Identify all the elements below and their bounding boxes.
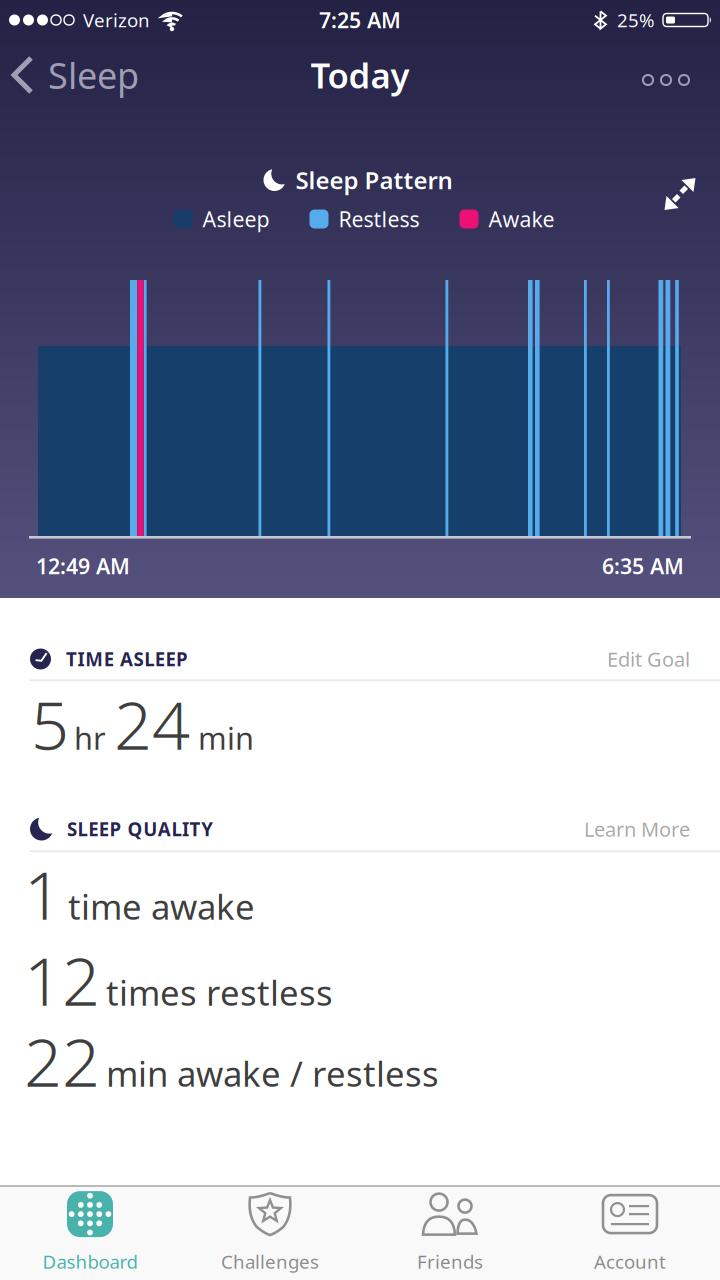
button[interactable]: Account [540,1188,720,1274]
staticText: 6:35 AM [602,552,684,580]
staticText: min awake / restless [106,1050,439,1096]
button[interactable]: Learn More [584,816,690,842]
staticText: hr [74,718,106,758]
staticText: Sleep Pattern [295,164,452,196]
staticText: Verizon [83,8,150,32]
staticText: SLEEP QUALITY [67,817,213,841]
staticText: 12 [24,936,100,1024]
staticText: 7:25 AM [319,6,401,34]
staticText: 24 [114,680,190,768]
staticText: Account [594,1249,666,1274]
staticText: 25% [617,8,655,32]
staticText: time awake [68,883,255,929]
staticText: 5 [31,680,69,768]
staticText: Friends [417,1249,483,1274]
staticText: min [198,718,254,758]
staticText: 1 [24,850,62,938]
button[interactable]: Edit Goal [607,646,690,672]
staticText: TIME ASLEEP [66,647,188,671]
button[interactable]: Back to Sleep [0,51,139,99]
staticText: Dashboard [42,1249,137,1274]
button[interactable]: Dashboard [0,1188,180,1274]
staticText: Asleep [202,205,269,233]
staticText: times restless [106,969,333,1015]
staticText: Learn More [584,816,690,842]
staticText: Awake [488,205,554,233]
staticText: Today [310,52,409,98]
button[interactable]: Challenges [180,1188,360,1274]
staticText: Sleep [48,51,139,99]
button[interactable]: Expand chart [664,177,696,210]
staticText: Challenges [221,1249,319,1274]
button[interactable]: Friends [360,1188,540,1274]
staticText: Restless [338,205,419,233]
staticText: 22 [24,1017,100,1105]
staticText: 12:49 AM [36,552,130,580]
staticText: Edit Goal [607,646,690,672]
button[interactable]: More options [643,75,689,85]
